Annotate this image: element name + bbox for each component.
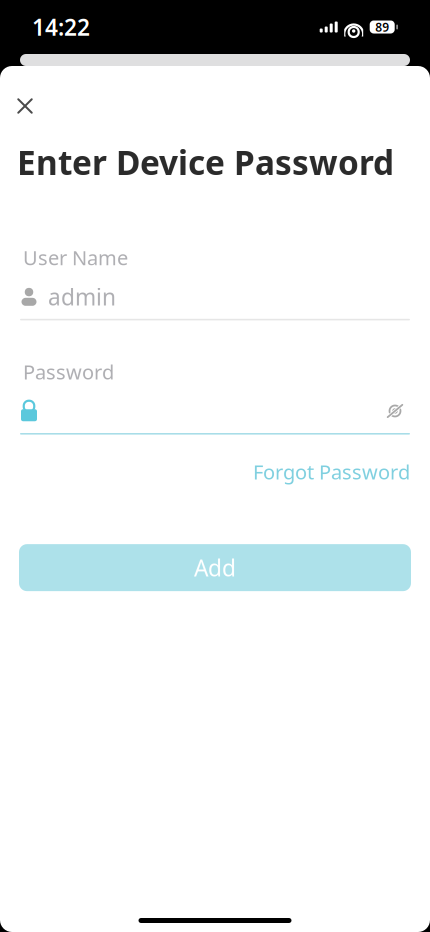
- button[interactable]: Add: [19, 544, 411, 591]
- staticText: 89: [375, 19, 389, 35]
- staticText: Add: [194, 553, 236, 583]
- staticText: Enter Device Password: [17, 140, 394, 184]
- staticText: Password: [23, 358, 114, 385]
- staticText: User Name: [23, 244, 128, 271]
- staticText: admin: [48, 282, 116, 312]
- staticText: 14:22: [32, 12, 90, 42]
- button[interactable]: Show password: [380, 398, 410, 424]
- button[interactable]: Close: [0, 84, 49, 128]
- staticText: Forgot Password: [253, 459, 410, 485]
- button[interactable]: Forgot Password: [253, 453, 410, 491]
